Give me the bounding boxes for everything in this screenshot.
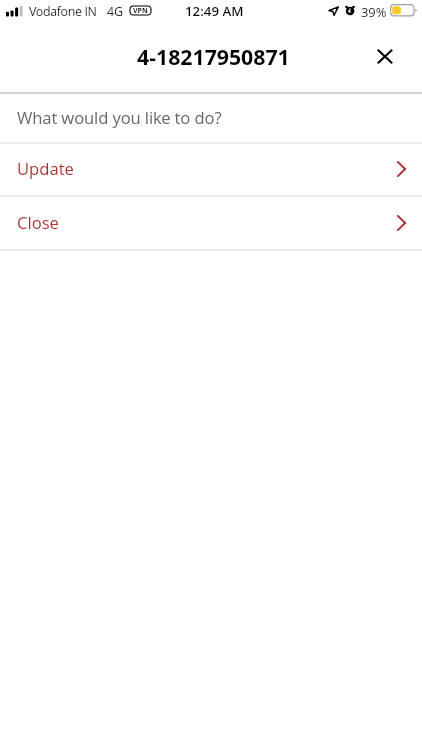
- staticText: 4G: [107, 3, 124, 20]
- staticText: 39%: [361, 3, 387, 21]
- staticText: VPN: [133, 6, 148, 15]
- staticText: 12:49 AM: [185, 2, 244, 20]
- staticText: Vodafone IN: [29, 3, 97, 20]
- staticText: Close: [17, 211, 59, 234]
- button[interactable]: Close: [363, 34, 407, 78]
- staticText: What would you like to do?: [17, 106, 222, 129]
- button[interactable]: Close: [0, 196, 422, 248]
- staticText: 4-18217950871: [137, 42, 290, 71]
- other: Location: [328, 6, 339, 16]
- button[interactable]: Update: [0, 142, 422, 194]
- staticText: Update: [17, 157, 74, 180]
